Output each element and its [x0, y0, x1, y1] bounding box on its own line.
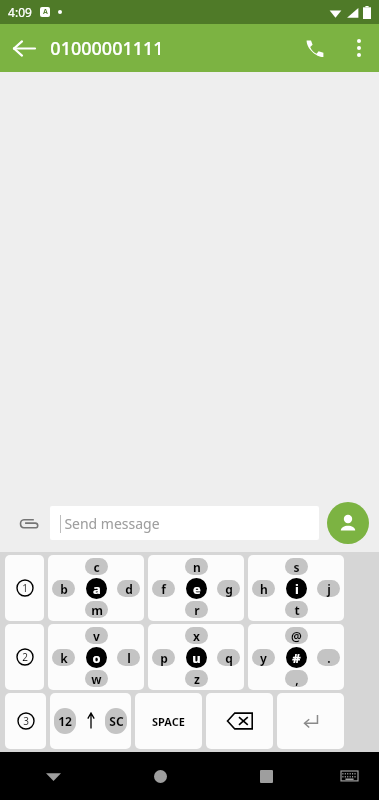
staticText: r — [194, 602, 200, 618]
staticText: q — [225, 650, 233, 666]
staticText: Send message — [64, 514, 160, 533]
button[interactable]: Recents — [213, 752, 319, 800]
staticText: . — [327, 650, 331, 666]
staticText: c — [93, 559, 100, 575]
staticText: e — [193, 580, 201, 598]
staticText: m — [91, 602, 103, 618]
staticText: l — [127, 650, 131, 666]
button[interactable]: Back — [0, 752, 107, 800]
button[interactable]: s — [248, 555, 344, 621]
staticText: g — [225, 581, 233, 597]
staticText: 1 — [22, 581, 28, 595]
staticText: p — [160, 650, 168, 666]
button[interactable]: Enter — [277, 693, 344, 749]
staticText: d — [125, 581, 133, 597]
staticText: 2 — [22, 650, 28, 664]
button[interactable]: Contact — [327, 502, 369, 544]
button[interactable]: Send message — [50, 506, 319, 540]
button[interactable]: c — [48, 555, 144, 621]
staticText: w — [91, 671, 102, 687]
staticText: h — [260, 581, 268, 597]
staticText: f — [161, 581, 166, 597]
button[interactable]: Back — [0, 24, 48, 72]
staticText: , — [295, 671, 299, 687]
staticText: j — [327, 581, 331, 597]
staticText: n — [193, 559, 201, 575]
staticText: y — [260, 650, 267, 666]
button[interactable]: n — [148, 555, 244, 621]
staticText: 3 — [23, 714, 29, 728]
button[interactable]: Symbols and shift — [50, 693, 131, 749]
staticText: k — [60, 650, 68, 666]
button[interactable]: Call — [291, 24, 339, 72]
staticText: t — [294, 602, 300, 618]
staticText: b — [60, 581, 68, 597]
staticText: u — [192, 649, 201, 667]
button[interactable]: SPACE — [135, 693, 202, 749]
staticText: SPACE — [152, 714, 185, 729]
staticText: i — [295, 580, 299, 598]
button[interactable]: Group 3 — [5, 693, 46, 749]
button[interactable]: @ — [248, 624, 344, 690]
staticText: o — [92, 649, 101, 667]
staticText: a — [93, 580, 101, 598]
staticText: @ — [291, 628, 302, 644]
button[interactable]: Home — [107, 752, 213, 800]
staticText: 4:09 — [8, 4, 32, 20]
button[interactable]: More options — [339, 28, 379, 68]
button[interactable]: Backspace — [206, 693, 273, 749]
button[interactable]: Group 1 — [5, 555, 44, 621]
button[interactable]: Switch keyboard — [319, 752, 379, 800]
staticText: 12 — [58, 713, 72, 729]
button[interactable]: v — [48, 624, 144, 690]
staticText: # — [292, 649, 301, 667]
staticText: x — [193, 628, 200, 644]
button[interactable]: x — [148, 624, 244, 690]
staticText: s — [293, 559, 300, 575]
staticText: v — [93, 628, 100, 644]
staticText: A — [43, 7, 48, 17]
staticText: 01000001111 — [50, 36, 164, 61]
staticText: SC — [109, 713, 124, 729]
staticText: z — [194, 671, 200, 687]
button[interactable]: Group 2 — [5, 624, 44, 690]
button[interactable]: Attach — [10, 505, 46, 541]
